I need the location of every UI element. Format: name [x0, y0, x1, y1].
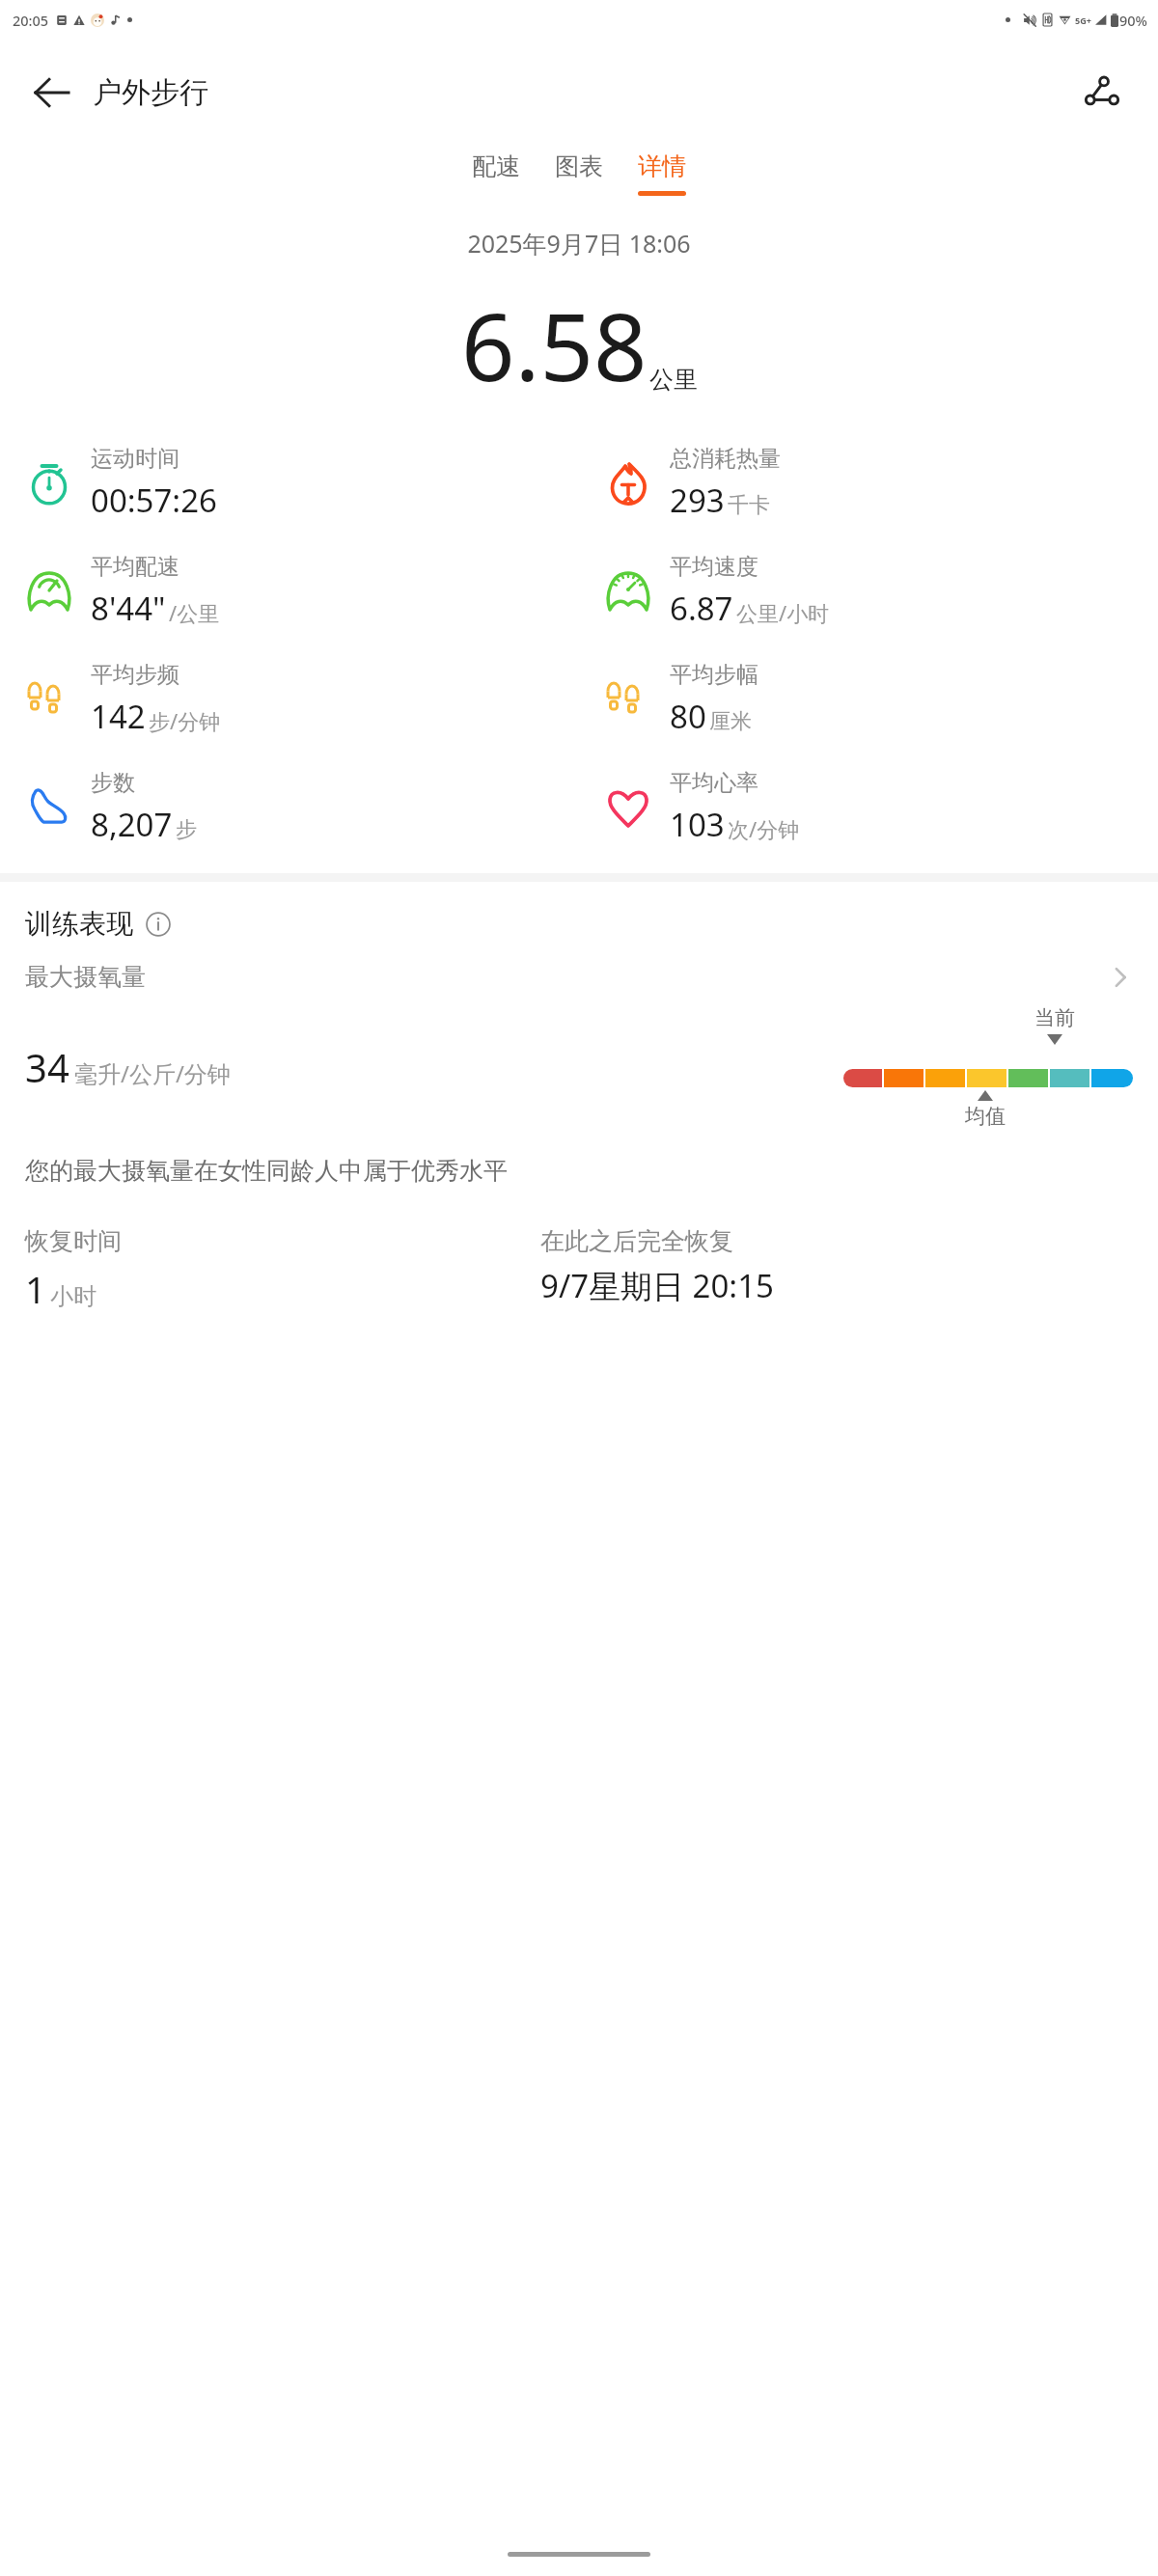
staticText: 千卡 [728, 492, 770, 519]
staticText: 8'44" [91, 587, 166, 630]
staticText: 配速 [472, 151, 520, 181]
staticText: 运动时间 [91, 445, 179, 473]
staticText: 103 [670, 803, 725, 846]
button[interactable]: 步数 [0, 765, 579, 850]
button[interactable]: Back [25, 66, 79, 120]
button[interactable]: Info [143, 909, 174, 940]
staticText: 平均心率 [670, 769, 758, 797]
staticText: 总消耗热量 [670, 445, 781, 473]
staticText: 8,207 [91, 803, 173, 846]
staticText: 步/分钟 [149, 706, 221, 735]
staticText: 毫升/公斤/分钟 [74, 1057, 231, 1089]
staticText: 6.58 [461, 281, 648, 408]
button[interactable]: 最大摄氧量 [25, 962, 1133, 992]
button[interactable]: 配速 [462, 146, 530, 202]
staticText: 平均步频 [91, 661, 179, 689]
staticText: 小时 [50, 1282, 96, 1311]
button[interactable]: 平均步幅 [579, 657, 1158, 742]
staticText: 步数 [91, 769, 135, 797]
staticText: 在此之后完全恢复 [540, 1226, 733, 1256]
staticText: 恢复时间 [25, 1226, 122, 1256]
button[interactable]: 图表 [545, 146, 613, 202]
button[interactable]: 平均速度 [579, 549, 1158, 634]
staticText: 详情 [638, 151, 686, 181]
button[interactable]: 详情 [628, 146, 696, 202]
staticText: 5G+ [1075, 14, 1091, 26]
staticText: 公里 [649, 365, 698, 395]
staticText: 平均配速 [91, 553, 179, 581]
staticText: 公里/小时 [736, 598, 830, 627]
staticText: 293 [670, 479, 725, 522]
staticText: 80 [670, 695, 706, 738]
staticText: 次/分钟 [728, 814, 800, 843]
staticText: 6.87 [670, 587, 733, 630]
staticText: 当前 [1034, 1005, 1075, 1030]
button[interactable]: 运动时间 [0, 441, 579, 526]
staticText: 户外步行 [93, 74, 208, 111]
button[interactable]: 平均步频 [0, 657, 579, 742]
button[interactable]: 平均心率 [579, 765, 1158, 850]
staticText: /公里 [169, 598, 220, 627]
staticText: 平均速度 [670, 553, 758, 581]
staticText: 34 [25, 1041, 69, 1093]
staticText: 步 [176, 816, 197, 843]
staticText: 平均步幅 [670, 661, 758, 689]
staticText: 142 [91, 695, 146, 738]
staticText: 图表 [555, 151, 603, 181]
staticText: 9/7星期日 20:15 [540, 1264, 774, 1307]
staticText: 1 [25, 1264, 46, 1314]
staticText: 训练表现 [25, 907, 133, 941]
staticText: 厘米 [709, 708, 752, 735]
staticText: 您的最大摄氧量在女性同龄人中属于优秀水平 [25, 1156, 508, 1186]
staticText: 00:57:26 [91, 479, 217, 522]
staticText: 90% [1119, 11, 1147, 30]
button[interactable]: Share [1075, 66, 1129, 120]
button[interactable]: 平均配速 [0, 549, 579, 634]
staticText: 20:05 [13, 11, 49, 30]
button[interactable]: 总消耗热量 [579, 441, 1158, 526]
staticText: 最大摄氧量 [25, 962, 146, 992]
staticText: 均值 [965, 1104, 1006, 1129]
staticText: 2025年9月7日 18:06 [467, 227, 691, 260]
